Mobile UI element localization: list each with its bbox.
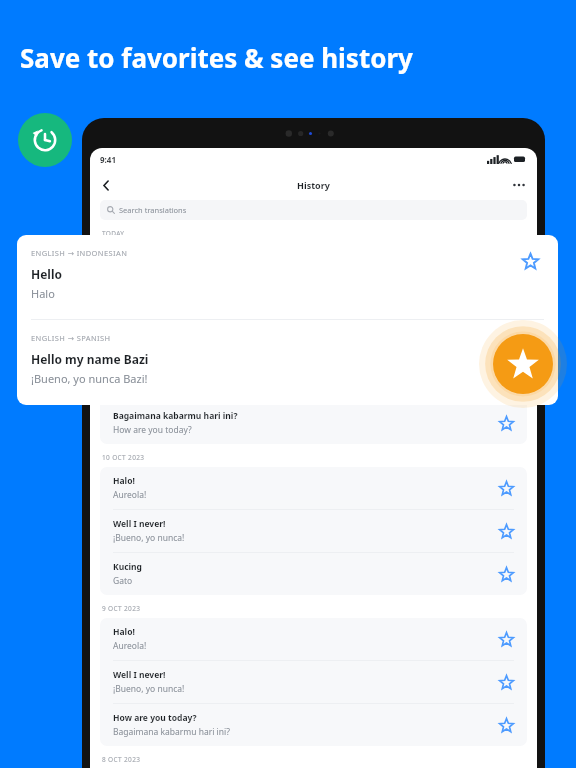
button[interactable]: More options <box>507 173 531 197</box>
staticText: Gato <box>113 575 133 587</box>
staticText: Aureola! <box>113 489 147 501</box>
button[interactable]: Favorite <box>494 713 519 738</box>
staticText: Well I never! <box>113 669 166 681</box>
staticText: Hello my name Bazi <box>31 351 149 367</box>
button[interactable]: ENGLISH → SPANISH <box>31 333 544 405</box>
button[interactable]: Bagaimana kabarmu hari ini? <box>100 402 527 444</box>
staticText: Hello <box>31 266 62 282</box>
staticText: ¡Bueno, yo nunca! <box>113 683 185 695</box>
staticText: ¡Bueno, yo nunca! <box>113 532 185 544</box>
button[interactable]: How are you today? <box>100 703 527 746</box>
staticText: ENGLISH → SPANISH <box>31 333 111 343</box>
staticText: ¡Bueno, yo nunca Bazi! <box>31 371 148 386</box>
staticText: 10 OCT 2023 <box>102 453 145 462</box>
staticText: Bagaimana kabarmu hari ini? <box>113 410 238 422</box>
staticText: Halo <box>31 286 55 301</box>
staticText: History <box>297 179 330 191</box>
staticText: Halo! <box>113 626 135 638</box>
button[interactable]: Halo! <box>100 467 527 509</box>
button[interactable]: Favorite <box>494 562 519 587</box>
staticText: Save to favorites & see history <box>20 40 413 75</box>
staticText: How are you today? <box>113 712 197 724</box>
staticText: Aureola! <box>113 640 147 652</box>
button[interactable]: Kucing <box>100 552 527 595</box>
button[interactable]: Favorite <box>494 476 519 501</box>
staticText: Search translations <box>119 205 187 215</box>
staticText: Well I never! <box>113 518 166 530</box>
staticText: TODAY <box>102 229 125 238</box>
staticText: 9:41 <box>100 154 116 165</box>
staticText: ENGLISH → INDONESIAN <box>31 248 128 258</box>
staticText: How are you today? <box>113 424 192 436</box>
button[interactable]: Favorite <box>517 248 544 275</box>
button[interactable]: Halo! <box>100 618 527 660</box>
staticText: Bagaimana kabarmu hari ini? <box>113 726 230 738</box>
button[interactable]: Search translations <box>100 200 527 220</box>
staticText: 9 OCT 2023 <box>102 604 141 613</box>
button[interactable]: Well I never! <box>100 660 527 703</box>
button[interactable]: History <box>18 113 72 167</box>
button[interactable]: Favorite <box>494 670 519 695</box>
staticText: Kucing <box>113 561 142 573</box>
button[interactable]: Back <box>94 173 118 197</box>
staticText: Halo! <box>113 475 135 487</box>
button[interactable]: Favorite <box>494 411 519 436</box>
button[interactable]: Favorite <box>494 627 519 652</box>
button[interactable]: ENGLISH → INDONESIAN <box>31 248 544 319</box>
button[interactable]: Favorite <box>494 519 519 544</box>
button[interactable]: Well I never! <box>100 509 527 552</box>
button[interactable]: Save to favorites <box>493 334 553 394</box>
staticText: 8 OCT 2023 <box>102 755 141 764</box>
